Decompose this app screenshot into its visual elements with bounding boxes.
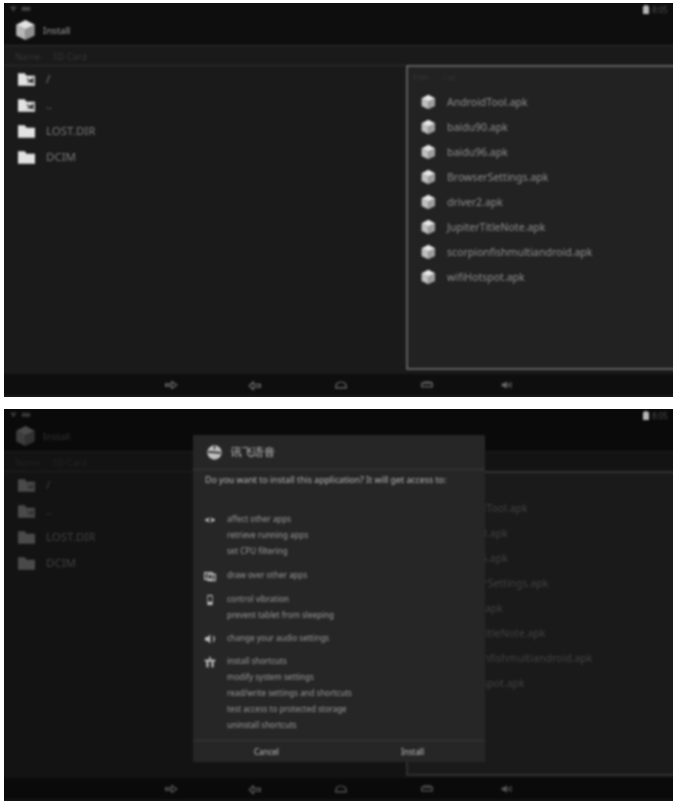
button[interactable]: Home	[324, 376, 358, 394]
staticText: 8:05	[652, 4, 668, 15]
staticText: draw over other apps	[227, 569, 308, 580]
button[interactable]: Install	[4, 421, 673, 451]
staticText: LOST.DIR	[46, 123, 96, 139]
button[interactable]: LOST.DIR	[4, 118, 673, 144]
button[interactable]: Forward	[154, 376, 188, 394]
button[interactable]: scorpionfishmultiandroid.apk	[407, 239, 673, 264]
button[interactable]: JupiterTitleNote.apk	[407, 214, 673, 239]
staticText: driver2.apk	[447, 601, 503, 615]
button[interactable]: driver2.apk	[407, 595, 673, 620]
staticText: driver2.apk	[447, 195, 503, 209]
button[interactable]: DCIM	[4, 144, 673, 170]
button[interactable]: Forward	[154, 780, 188, 798]
staticText: Do you want to install this application?…	[205, 474, 447, 486]
staticText: control vibration	[227, 593, 290, 604]
button[interactable]: DCIM	[4, 550, 673, 576]
staticText: DCIM	[46, 555, 76, 571]
button[interactable]: wifiHotspot.apk	[407, 264, 673, 289]
button[interactable]: baidu90.apk	[407, 520, 673, 545]
button[interactable]: ..	[4, 498, 673, 524]
button[interactable]: driver2.apk	[407, 189, 673, 214]
staticText: baidu96.apk	[447, 145, 508, 159]
staticText: Name	[15, 50, 41, 62]
button[interactable]: Recent apps	[410, 376, 444, 394]
button[interactable]: baidu96.apk	[407, 139, 673, 164]
staticText: Install	[43, 430, 71, 443]
button[interactable]: BrowserSettings.apk	[407, 164, 673, 189]
staticText: AndroidTool.apk	[447, 501, 528, 515]
button[interactable]: Back	[238, 376, 272, 394]
staticText: baidu96.apk	[447, 551, 508, 565]
staticText: wifiHotspot.apk	[447, 270, 525, 284]
staticText: scorpionfishmultiandroid.apk	[447, 245, 593, 259]
button[interactable]: Cancel	[193, 741, 339, 762]
button[interactable]: ..	[4, 92, 673, 118]
staticText: Install	[401, 746, 424, 757]
staticText: JupiterTitleNote.apk	[447, 220, 546, 234]
staticText: /	[46, 71, 51, 87]
staticText: scorpionfishmultiandroid.apk	[447, 651, 593, 665]
staticText: Path	[413, 479, 429, 489]
staticText: BrowserSettings.apk	[447, 170, 549, 184]
staticText: AndroidTool.apk	[447, 95, 528, 109]
staticText: ..	[46, 97, 53, 113]
button[interactable]: Home	[324, 780, 358, 798]
button[interactable]: JupiterTitleNote.apk	[407, 620, 673, 645]
staticText: /	[46, 477, 51, 493]
button[interactable]: AndroidTool.apk	[407, 495, 673, 520]
staticText: read/write settings and shortcuts	[227, 687, 352, 698]
staticText: BrowserSettings.apk	[447, 576, 549, 590]
button[interactable]: Install	[4, 15, 673, 45]
button[interactable]: Install	[339, 741, 485, 762]
staticText: DCIM	[46, 149, 76, 165]
button[interactable]: AndroidTool.apk	[407, 89, 673, 114]
staticText: / sd	[443, 479, 456, 489]
button[interactable]: 讯飞语音	[193, 435, 485, 469]
button[interactable]: baidu90.apk	[407, 114, 673, 139]
staticText: change your audio settings	[227, 632, 330, 643]
staticText: 8:05	[652, 410, 668, 421]
staticText: baidu90.apk	[447, 120, 508, 134]
button[interactable]: Recent apps	[410, 780, 444, 798]
button[interactable]: /	[4, 66, 673, 92]
button[interactable]: scorpionfishmultiandroid.apk	[407, 645, 673, 670]
button[interactable]: Volume	[490, 780, 524, 798]
staticText: SD Card	[53, 50, 87, 62]
staticText: uninstall shortcuts	[227, 719, 297, 730]
staticText: Cancel	[254, 746, 279, 757]
button[interactable]: Back	[238, 780, 272, 798]
staticText: modify system settings	[227, 671, 314, 682]
button[interactable]: BrowserSettings.apk	[407, 570, 673, 595]
staticText: retrieve running apps	[227, 529, 309, 540]
staticText: set CPU filtering	[227, 545, 288, 556]
staticText: wifiHotspot.apk	[447, 676, 525, 690]
button[interactable]: wifiHotspot.apk	[407, 670, 673, 695]
staticText: prevent tablet from sleeping	[227, 609, 334, 620]
staticText: test access to protected storage	[227, 703, 347, 714]
button[interactable]: baidu96.apk	[407, 545, 673, 570]
staticText: 讯飞语音	[231, 445, 275, 459]
staticText: baidu90.apk	[447, 526, 508, 540]
staticText: JupiterTitleNote.apk	[447, 626, 546, 640]
staticText: LOST.DIR	[46, 529, 96, 545]
button[interactable]: Volume	[490, 376, 524, 394]
staticText: Install	[43, 24, 71, 37]
staticText: install shortcuts	[227, 655, 287, 666]
staticText: affect other apps	[227, 513, 292, 524]
button[interactable]: LOST.DIR	[4, 524, 673, 550]
button[interactable]: /	[4, 472, 673, 498]
